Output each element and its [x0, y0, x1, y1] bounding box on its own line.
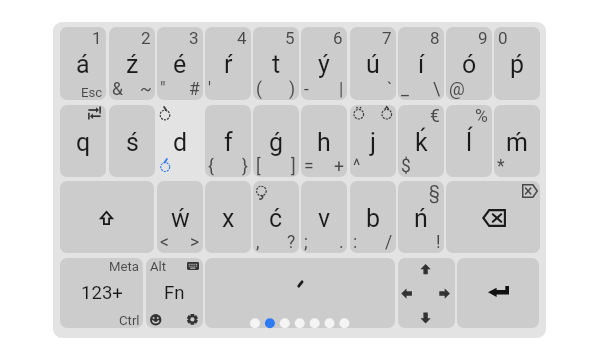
- staticText: f: [224, 128, 233, 157]
- staticText: 3: [189, 28, 199, 48]
- staticText: ý: [318, 50, 330, 79]
- button[interactable]: ẃ: [157, 181, 203, 253]
- staticText: &: [112, 79, 123, 100]
- staticText: q: [76, 128, 91, 157]
- button[interactable]: Backspace: [446, 181, 540, 253]
- staticText: /: [385, 232, 393, 253]
- staticText: 1: [92, 28, 102, 48]
- staticText: §: [429, 182, 440, 203]
- button[interactable]: ĺ: [446, 105, 492, 177]
- button[interactable]: Symbols: [60, 258, 143, 328]
- button[interactable]: j: [350, 105, 396, 177]
- staticText: é: [173, 50, 187, 79]
- button[interactable]: ḿ: [494, 105, 540, 177]
- staticText: ń: [414, 204, 428, 233]
- staticText: 0: [498, 28, 508, 48]
- staticText: Fn: [164, 282, 185, 304]
- button[interactable]: Shift: [60, 181, 154, 253]
- staticText: Alt: [150, 259, 167, 274]
- button[interactable]: b: [350, 181, 396, 253]
- staticText: :: [353, 232, 358, 253]
- staticText: í: [418, 50, 425, 79]
- staticText: 9: [478, 28, 488, 48]
- staticText: 6: [333, 28, 343, 48]
- staticText: +: [334, 156, 344, 177]
- staticText: 7: [382, 28, 392, 48]
- staticText: 123+: [81, 282, 123, 304]
- staticText: =: [304, 156, 314, 177]
- button[interactable]: t: [253, 27, 299, 100]
- staticText: Esc: [81, 85, 103, 100]
- staticText: `: [387, 79, 393, 100]
- button[interactable]: á: [60, 27, 106, 100]
- button[interactable]: Arrow keys: [398, 258, 455, 328]
- staticText: ?: [287, 232, 296, 253]
- staticText: ): [289, 79, 296, 100]
- staticText: -: [304, 79, 309, 100]
- staticText: ǵ: [269, 128, 284, 157]
- staticText: €: [430, 106, 440, 127]
- button[interactable]: Space: [205, 258, 395, 328]
- button[interactable]: ṕ: [494, 27, 540, 100]
- staticText: ^: [353, 156, 361, 177]
- staticText: ḱ: [415, 128, 428, 157]
- staticText: }: [242, 156, 248, 177]
- button[interactable]: é: [157, 27, 203, 100]
- button[interactable]: ź: [109, 27, 155, 100]
- staticText: ;: [304, 232, 308, 253]
- staticText: t: [272, 50, 281, 79]
- staticText: ź: [126, 50, 139, 79]
- button[interactable]: ú: [350, 27, 396, 100]
- staticText: ś: [126, 128, 139, 157]
- button[interactable]: x: [205, 181, 251, 253]
- staticText: 5: [285, 28, 295, 48]
- staticText: ḿ: [506, 128, 528, 157]
- button[interactable]: Fn: [146, 258, 203, 328]
- staticText: ]: [291, 156, 296, 177]
- staticText: ó: [462, 50, 477, 79]
- button[interactable]: q: [60, 105, 106, 177]
- button[interactable]: í: [398, 27, 444, 100]
- button[interactable]: h: [301, 105, 347, 177]
- staticText: .: [339, 232, 344, 253]
- staticText: [: [256, 156, 261, 177]
- button[interactable]: v: [301, 181, 347, 253]
- staticText: @: [449, 79, 465, 100]
- staticText: _: [401, 79, 409, 100]
- staticText: #: [189, 79, 200, 100]
- staticText: <: [160, 232, 169, 253]
- staticText: \: [433, 79, 441, 100]
- staticText: b: [366, 204, 381, 233]
- staticText: ,: [256, 232, 260, 253]
- staticText: á: [76, 50, 90, 79]
- button[interactable]: ḱ: [398, 105, 444, 177]
- staticText: ú: [366, 50, 380, 79]
- staticText: v: [318, 204, 331, 233]
- button[interactable]: ć: [253, 181, 299, 253]
- staticText: ĺ: [466, 128, 473, 157]
- staticText: ṕ: [510, 50, 525, 79]
- staticText: >: [190, 232, 200, 253]
- staticText: j: [370, 128, 376, 157]
- staticText: %: [475, 106, 488, 127]
- staticText: ': [208, 79, 212, 100]
- staticText: x: [222, 204, 235, 233]
- button[interactable]: ý: [301, 27, 347, 100]
- staticText: *: [497, 156, 505, 177]
- button[interactable]: d: [157, 105, 203, 177]
- button[interactable]: ŕ: [205, 27, 251, 100]
- staticText: ć: [269, 204, 283, 233]
- button[interactable]: ń: [398, 181, 444, 253]
- staticText: d: [173, 128, 188, 157]
- staticText: $: [401, 156, 411, 177]
- button[interactable]: ó: [446, 27, 492, 100]
- button[interactable]: ǵ: [253, 105, 299, 177]
- button[interactable]: ś: [109, 105, 155, 177]
- button[interactable]: Enter: [457, 258, 539, 328]
- staticText: ~: [140, 79, 152, 100]
- staticText: Ctrl: [119, 313, 140, 328]
- button[interactable]: f: [205, 105, 251, 177]
- staticText: 4: [237, 28, 247, 48]
- staticText: !: [436, 232, 441, 253]
- staticText: ŕ: [224, 50, 233, 79]
